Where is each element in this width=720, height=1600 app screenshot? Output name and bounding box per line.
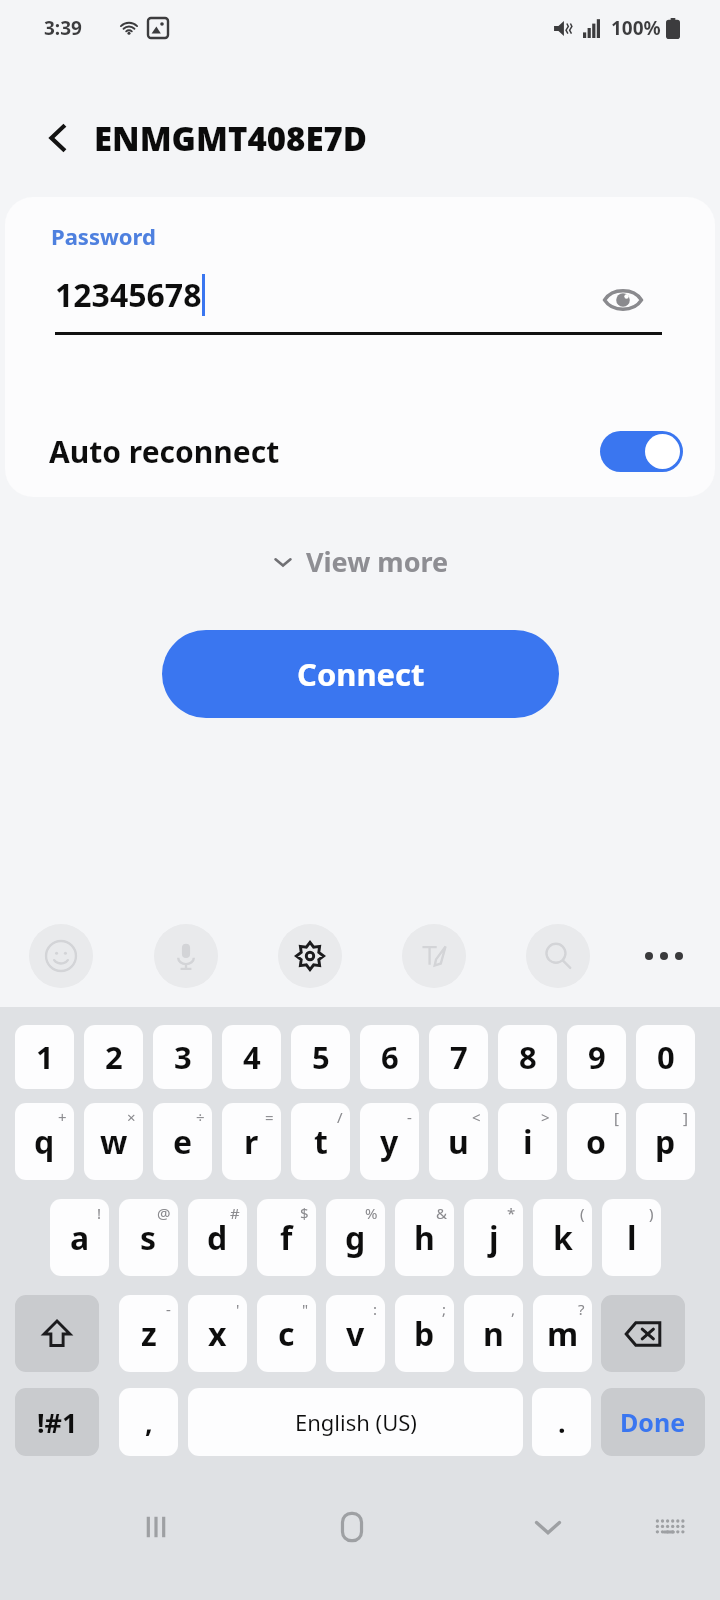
button[interactable]: 7 (429, 1025, 488, 1089)
button[interactable]: 4 (222, 1025, 281, 1089)
button[interactable]: h (395, 1199, 454, 1276)
button[interactable]: Search (526, 924, 590, 988)
staticText: x (208, 1312, 227, 1356)
staticText: 3:39 (44, 15, 82, 41)
button[interactable]: 2 (84, 1025, 143, 1089)
staticText: < (472, 1107, 481, 1127)
staticText: , (511, 1299, 516, 1319)
staticText: ! (97, 1203, 102, 1223)
button[interactable]: , (119, 1388, 178, 1456)
staticText: - (166, 1299, 171, 1319)
button[interactable]: q (15, 1103, 74, 1180)
staticText: d (207, 1216, 228, 1260)
staticText: 5 (312, 1036, 330, 1078)
staticText: j (489, 1216, 499, 1260)
button[interactable]: Auto reconnect (5, 405, 715, 497)
staticText: y (380, 1120, 399, 1164)
button[interactable]: Hide keyboard (518, 1497, 578, 1557)
staticText: s (140, 1216, 157, 1260)
staticText: = (265, 1107, 274, 1127)
staticText: " (302, 1299, 309, 1319)
button[interactable]: Shift (15, 1295, 99, 1372)
button[interactable]: s (119, 1199, 178, 1276)
button[interactable]: Connect (162, 630, 559, 718)
button[interactable]: . (532, 1388, 591, 1456)
staticText: & (436, 1203, 447, 1223)
staticText: m (547, 1312, 579, 1356)
button[interactable]: y (360, 1103, 419, 1180)
staticText: 8 (519, 1036, 537, 1078)
button[interactable]: z (119, 1295, 178, 1372)
button[interactable]: 6 (360, 1025, 419, 1089)
button[interactable]: v (326, 1295, 385, 1372)
staticText: + (58, 1107, 67, 1127)
staticText: 0 (657, 1036, 675, 1078)
staticText: !#1 (37, 1404, 78, 1441)
button[interactable]: Backspace (601, 1295, 685, 1372)
button[interactable]: m (533, 1295, 592, 1372)
staticText: ÷ (196, 1107, 205, 1127)
button[interactable]: p (636, 1103, 695, 1180)
button[interactable]: t (291, 1103, 350, 1180)
button[interactable]: g (326, 1199, 385, 1276)
button[interactable]: Home (322, 1497, 382, 1557)
button[interactable]: d (188, 1199, 247, 1276)
button[interactable]: o (567, 1103, 626, 1180)
button[interactable]: 3 (153, 1025, 212, 1089)
staticText: e (173, 1120, 193, 1164)
button[interactable]: a (50, 1199, 109, 1276)
staticText: c (278, 1312, 295, 1356)
button[interactable]: Keyboard layout (644, 1501, 696, 1553)
button[interactable]: x (188, 1295, 247, 1372)
staticText: > (541, 1107, 550, 1127)
staticText: Password (51, 221, 156, 251)
staticText: ; (442, 1299, 447, 1319)
button[interactable]: l (602, 1199, 661, 1276)
button[interactable]: i (498, 1103, 557, 1180)
button[interactable]: c (257, 1295, 316, 1372)
staticText: n (483, 1312, 504, 1356)
staticText: , (145, 1404, 153, 1441)
button[interactable]: k (533, 1199, 592, 1276)
button[interactable]: u (429, 1103, 488, 1180)
button[interactable]: n (464, 1295, 523, 1372)
button[interactable]: r (222, 1103, 281, 1180)
button[interactable]: 1 (15, 1025, 74, 1089)
button[interactable]: w (84, 1103, 143, 1180)
button[interactable]: View more (258, 535, 463, 588)
button[interactable]: b (395, 1295, 454, 1372)
button[interactable]: 0 (636, 1025, 695, 1089)
staticText: 4 (243, 1036, 261, 1078)
button[interactable]: 8 (498, 1025, 557, 1089)
staticText: × (127, 1107, 136, 1127)
button[interactable]: Done (601, 1388, 705, 1456)
button[interactable]: English (US) (188, 1388, 523, 1456)
button[interactable]: More options (632, 924, 696, 988)
staticText: r (244, 1120, 259, 1164)
button[interactable]: 9 (567, 1025, 626, 1089)
button[interactable]: 5 (291, 1025, 350, 1089)
staticText: : (373, 1299, 378, 1319)
staticText: View more (306, 543, 449, 580)
button[interactable]: e (153, 1103, 212, 1180)
button[interactable]: !#1 (15, 1388, 99, 1456)
staticText: . (558, 1404, 566, 1441)
staticText: Connect (297, 653, 425, 695)
button[interactable]: f (257, 1199, 316, 1276)
button[interactable]: Emoji (29, 924, 93, 988)
button[interactable]: j (464, 1199, 523, 1276)
button[interactable]: Show password (593, 270, 653, 330)
staticText: l (627, 1216, 637, 1260)
staticText: v (346, 1312, 365, 1356)
button[interactable]: Settings (278, 924, 342, 988)
button[interactable]: Back (30, 110, 86, 166)
staticText: ( (580, 1203, 585, 1223)
button[interactable]: Voice input (154, 924, 218, 988)
staticText: t (314, 1120, 328, 1164)
staticText: h (414, 1216, 435, 1260)
staticText: g (345, 1216, 366, 1260)
staticText: o (586, 1120, 607, 1164)
button[interactable]: Handwriting (402, 924, 466, 988)
button[interactable]: Recents (126, 1497, 186, 1557)
staticText: ] (683, 1107, 688, 1127)
